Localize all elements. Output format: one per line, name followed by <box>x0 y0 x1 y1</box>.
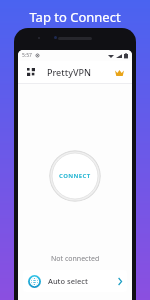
button[interactable]: CONNECT <box>49 150 101 202</box>
button[interactable]: Menu <box>23 64 39 80</box>
button[interactable]: Auto select <box>23 270 127 292</box>
staticText: Tap to Connect <box>29 8 121 26</box>
staticText: PrettyVPN <box>47 66 91 78</box>
staticText: Auto select <box>48 276 88 286</box>
staticText: Not connected <box>51 254 100 264</box>
staticText: 5:57 <box>22 52 32 59</box>
button[interactable]: Premium <box>111 64 127 80</box>
staticText: CONNECT <box>59 172 91 180</box>
